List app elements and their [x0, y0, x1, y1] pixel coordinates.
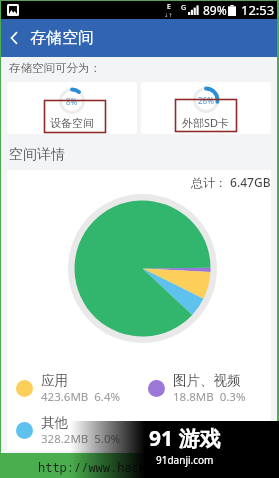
staticText: http://www.hackhome.com: [38, 459, 204, 475]
staticText: 设备空间: [50, 116, 94, 130]
staticText: 图片、视频: [173, 372, 241, 389]
button[interactable]: 应用: [7, 367, 139, 409]
staticText: 空间详情: [9, 146, 65, 164]
staticText: 8%: [66, 96, 78, 107]
staticText: 存储空间可分为：: [9, 61, 101, 75]
staticText: 18.8MB 0.3%: [173, 389, 246, 405]
staticText: 总计： 6.47GB: [191, 174, 271, 190]
staticText: 91 游戏: [149, 424, 221, 453]
staticText: ↓↑: [164, 12, 173, 18]
staticText: 89%: [203, 2, 227, 18]
staticText: E: [167, 2, 171, 12]
button[interactable]: 图片、视频: [139, 367, 271, 409]
staticText: 其他: [41, 414, 68, 431]
staticText: 328.2MB 5.0%: [41, 431, 121, 447]
staticText: 应用: [41, 372, 68, 389]
button[interactable]: 其他: [7, 409, 139, 451]
staticText: 存储空间: [30, 28, 94, 48]
staticText: 12:53: [241, 1, 275, 19]
staticText: G: [181, 3, 187, 13]
staticText: 外部SD卡: [182, 115, 230, 130]
button[interactable]: 26%: [141, 82, 271, 134]
button[interactable]: Back: [1, 19, 27, 57]
staticText: 91danji.com: [156, 453, 214, 467]
staticText: 26%: [198, 95, 214, 106]
staticText: 423.6MB 6.4%: [41, 389, 121, 405]
button[interactable]: 8%: [7, 82, 137, 134]
